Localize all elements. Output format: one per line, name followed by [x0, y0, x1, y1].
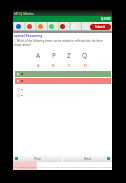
button[interactable]: 18 [55, 162, 58, 170]
button[interactable]: 36 [109, 162, 112, 170]
button[interactable]: 11 [34, 162, 37, 170]
button[interactable]: Tool 4 [46, 22, 57, 30]
button[interactable] [15, 93, 111, 98]
staticText: 18 [55, 165, 58, 168]
staticText: 21 [64, 165, 67, 168]
button[interactable]: A [31, 51, 46, 68]
button[interactable]: 30 [91, 162, 94, 170]
staticText: 22 [67, 165, 70, 168]
button[interactable]: Tool 1 [13, 22, 24, 30]
button[interactable]: 28 [85, 162, 88, 170]
staticText: Time: 59 [96, 11, 111, 16]
staticText: spatial Reasoning [14, 34, 43, 38]
staticText: 12 [37, 165, 40, 168]
button[interactable]: 12 [37, 162, 40, 170]
button[interactable]: 14 [43, 162, 46, 170]
button[interactable]: 27 [82, 162, 85, 170]
staticText: 1 [13, 165, 15, 168]
button[interactable]: 13 [40, 162, 43, 170]
button[interactable]: 17 [52, 162, 55, 170]
button[interactable]: 26 [79, 162, 82, 170]
staticText: 26 [79, 165, 82, 168]
staticText: Prev [34, 157, 41, 161]
staticText: MCQ Maths [14, 11, 34, 16]
staticText: 17 [52, 165, 55, 168]
button[interactable]: 34 [103, 162, 106, 170]
staticText: 2 [15, 165, 17, 168]
staticText: 14 [43, 165, 46, 168]
staticText: 6 [23, 165, 25, 168]
staticText: 19 [58, 165, 61, 168]
button[interactable]: 9 [29, 162, 31, 170]
staticText: 1. Which of the following letters can be… [14, 39, 110, 47]
staticText: 16 [49, 165, 52, 168]
button[interactable]: 25 [76, 162, 79, 170]
staticText: 25 [76, 165, 79, 168]
button[interactable]: 20 [61, 162, 64, 170]
staticText: 15 [46, 165, 49, 168]
staticText: P [52, 51, 56, 60]
staticText: 10 [31, 165, 34, 168]
staticText: Submit [95, 25, 106, 29]
button[interactable] [15, 78, 111, 84]
staticText: 36 [109, 165, 112, 168]
staticText: Next [84, 157, 91, 161]
staticText: 20 [61, 165, 64, 168]
staticText: 32 [97, 165, 100, 168]
staticText: 31 [94, 165, 97, 168]
button[interactable] [15, 71, 111, 77]
button[interactable]: 10 [31, 162, 34, 170]
staticText: 34 [103, 165, 106, 168]
button[interactable]: P [46, 51, 61, 68]
staticText: 7 [25, 165, 27, 168]
staticText: Q [82, 51, 88, 60]
staticText: 4 [19, 165, 21, 168]
button[interactable]: 7 [25, 162, 27, 170]
staticText: 23 [70, 165, 73, 168]
staticText: B [52, 63, 55, 68]
staticText: 30 [91, 165, 94, 168]
button[interactable]: Next [63, 155, 112, 162]
button[interactable]: Q [77, 51, 93, 68]
button[interactable]: Tool 2 [24, 22, 35, 30]
button[interactable]: 29 [88, 162, 91, 170]
button[interactable]: 16 [49, 162, 52, 170]
button[interactable]: 35 [106, 162, 109, 170]
staticText: A [36, 51, 41, 60]
staticText: 13 [40, 165, 43, 168]
button[interactable]: 3 [17, 162, 19, 170]
button[interactable]: 4 [19, 162, 21, 170]
button[interactable]: Tool 3 [35, 22, 46, 30]
button[interactable]: 8 [27, 162, 29, 170]
button[interactable]: Submit [90, 24, 111, 30]
button[interactable]: Prev [13, 155, 62, 162]
button[interactable]: 1 [13, 162, 15, 170]
button[interactable]: Tool 6 [68, 22, 79, 30]
staticText: 29 [88, 165, 91, 168]
button[interactable]: 15 [46, 162, 49, 170]
staticText: Q 5/50 [101, 17, 111, 21]
button[interactable]: 33 [100, 162, 103, 170]
button[interactable]: Tool 5 [57, 22, 68, 30]
button[interactable] [15, 87, 111, 92]
staticText: 35 [106, 165, 109, 168]
button[interactable]: 6 [23, 162, 25, 170]
staticText: 8 [27, 165, 29, 168]
staticText: 33 [100, 165, 103, 168]
button[interactable]: 2 [15, 162, 17, 170]
staticText: 11 [34, 165, 37, 168]
staticText: 24 [73, 165, 76, 168]
button[interactable]: Z [61, 51, 77, 68]
button[interactable]: 5 [21, 162, 23, 170]
button[interactable]: 23 [70, 162, 73, 170]
staticText: A [37, 63, 40, 68]
button[interactable]: 19 [58, 162, 61, 170]
staticText: C [68, 63, 71, 68]
button[interactable]: 32 [97, 162, 100, 170]
staticText: Z [67, 51, 71, 60]
button[interactable]: 21 [64, 162, 67, 170]
button[interactable]: 24 [73, 162, 76, 170]
button[interactable]: 22 [67, 162, 70, 170]
button[interactable]: 31 [94, 162, 97, 170]
staticText: D [84, 63, 87, 68]
